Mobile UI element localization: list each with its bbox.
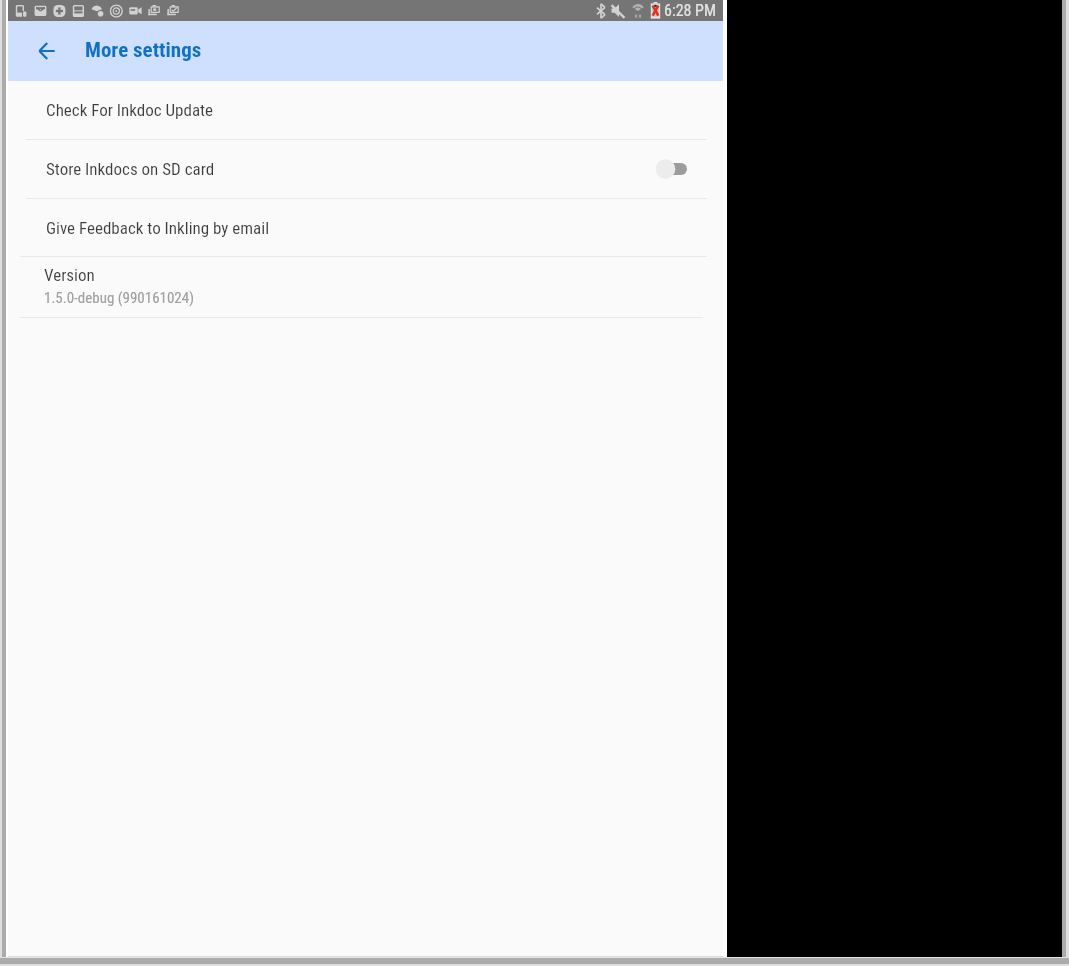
button[interactable]: Give Feedback to Inkling by email: [8, 199, 723, 256]
staticText: 6:28 PM: [664, 1, 717, 20]
button[interactable]: Navigate up: [26, 30, 68, 72]
staticText: Version: [44, 265, 95, 285]
button[interactable]: Store Inkdocs on SD card toggle: [640, 151, 696, 187]
button[interactable]: Version: [8, 257, 723, 317]
staticText: Store Inkdocs on SD card: [46, 159, 215, 179]
button[interactable]: Check For Inkdoc Update: [8, 81, 723, 139]
staticText: More settings: [85, 38, 202, 63]
staticText: Give Feedback to Inkling by email: [46, 218, 270, 238]
staticText: 1.5.0-debug (990161024): [44, 289, 194, 307]
button[interactable]: Store Inkdocs on SD card: [8, 140, 723, 198]
staticText: Check For Inkdoc Update: [46, 100, 214, 120]
